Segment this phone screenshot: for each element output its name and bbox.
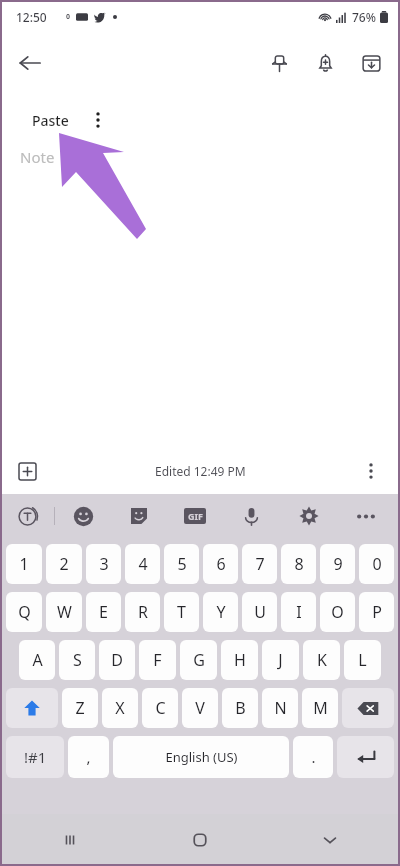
staticText: J (278, 649, 283, 671)
button[interactable]: S (59, 640, 95, 680)
button[interactable]: 6 (203, 544, 238, 584)
staticText: E (99, 601, 108, 623)
button[interactable]: Home (176, 816, 224, 864)
button[interactable] (342, 688, 394, 728)
button[interactable]: Q (6, 592, 42, 632)
button[interactable] (6, 688, 58, 728)
button[interactable]: More options (352, 452, 390, 490)
button[interactable]: P (359, 592, 394, 632)
staticText: 4 (138, 553, 148, 575)
button[interactable]: GIF (167, 494, 223, 538)
staticText: . (311, 747, 316, 767)
button[interactable]: Z (62, 688, 98, 728)
button[interactable]: E (86, 592, 121, 632)
button[interactable]: 9 (320, 544, 355, 584)
button[interactable]: Paste (18, 99, 116, 141)
staticText: 12:50 (16, 9, 47, 25)
button[interactable]: Translate (0, 494, 54, 538)
button[interactable]: K (303, 640, 340, 680)
staticText: 6 (216, 553, 226, 575)
staticText: Q (18, 601, 31, 623)
staticText: !#1 (24, 747, 47, 767)
button[interactable]: V (182, 688, 218, 728)
staticText: Note (20, 147, 55, 167)
button[interactable]: G (180, 640, 217, 680)
staticText: P (372, 601, 382, 623)
button[interactable]: Archive (348, 40, 394, 86)
button[interactable]: Pin (256, 40, 302, 86)
button[interactable]: 8 (281, 544, 316, 584)
button[interactable]: O (320, 592, 355, 632)
staticText: B (235, 697, 246, 719)
staticText: Paste (32, 111, 69, 130)
staticText: T (177, 601, 186, 623)
button[interactable]: H (221, 640, 258, 680)
button[interactable]: C (142, 688, 178, 728)
staticText: GIF (188, 510, 203, 522)
staticText: R (138, 601, 148, 623)
button[interactable]: 7 (242, 544, 277, 584)
staticText: 76% (352, 9, 376, 25)
button[interactable]: Voice input (223, 494, 280, 538)
staticText: G (193, 649, 205, 671)
staticText: S (73, 649, 82, 671)
button[interactable]: Back (6, 39, 54, 87)
staticText: W (57, 601, 72, 623)
button[interactable]: L (344, 640, 381, 680)
staticText: 3 (99, 553, 109, 575)
button[interactable]: A (19, 640, 55, 680)
button[interactable]: Emoji (55, 494, 111, 538)
staticText: O (331, 601, 344, 623)
button[interactable]: 0 (359, 544, 394, 584)
button[interactable]: F (139, 640, 176, 680)
button[interactable]: 1 (6, 544, 42, 584)
button[interactable]: 3 (86, 544, 121, 584)
staticText: 5 (177, 553, 187, 575)
button[interactable]: D (99, 640, 135, 680)
button[interactable]: . (293, 736, 333, 778)
staticText: , (86, 747, 91, 767)
button[interactable] (337, 736, 394, 778)
button[interactable]: B (222, 688, 258, 728)
button[interactable]: J (262, 640, 299, 680)
button[interactable]: R (125, 592, 160, 632)
button[interactable]: Reminder (302, 40, 348, 86)
staticText: X (115, 697, 125, 719)
staticText: 2 (59, 553, 69, 575)
staticText: V (195, 697, 205, 719)
staticText: N (274, 697, 287, 719)
staticText: M (313, 697, 328, 719)
staticText: D (111, 649, 123, 671)
button[interactable]: 2 (46, 544, 82, 584)
button[interactable]: More (337, 494, 394, 538)
button[interactable]: Hide keyboard (306, 816, 354, 864)
button[interactable]: T (164, 592, 199, 632)
button[interactable]: W (46, 592, 82, 632)
staticText: U (254, 601, 266, 623)
staticText: I (296, 601, 302, 623)
staticText: H (234, 649, 246, 671)
button[interactable]: , (68, 736, 109, 778)
button[interactable]: X (102, 688, 138, 728)
staticText: 8 (294, 553, 304, 575)
staticText: 7 (255, 553, 265, 575)
button[interactable]: !#1 (6, 736, 64, 778)
staticText: 0 (66, 12, 71, 22)
button[interactable]: Recent apps (46, 816, 94, 864)
button[interactable]: U (242, 592, 277, 632)
staticText: 9 (333, 553, 343, 575)
button[interactable]: N (262, 688, 298, 728)
button[interactable]: English (US) (113, 736, 289, 778)
staticText: C (155, 697, 166, 719)
button[interactable]: Add (8, 452, 46, 490)
staticText: F (153, 649, 162, 671)
button[interactable]: I (281, 592, 316, 632)
button[interactable]: Settings (280, 494, 337, 538)
button[interactable]: 4 (125, 544, 160, 584)
button[interactable]: Stickers (111, 494, 167, 538)
staticText: English (US) (165, 748, 238, 766)
button[interactable]: Y (203, 592, 238, 632)
button[interactable]: 5 (164, 544, 199, 584)
button[interactable]: M (302, 688, 338, 728)
staticText: 0 (372, 553, 382, 575)
